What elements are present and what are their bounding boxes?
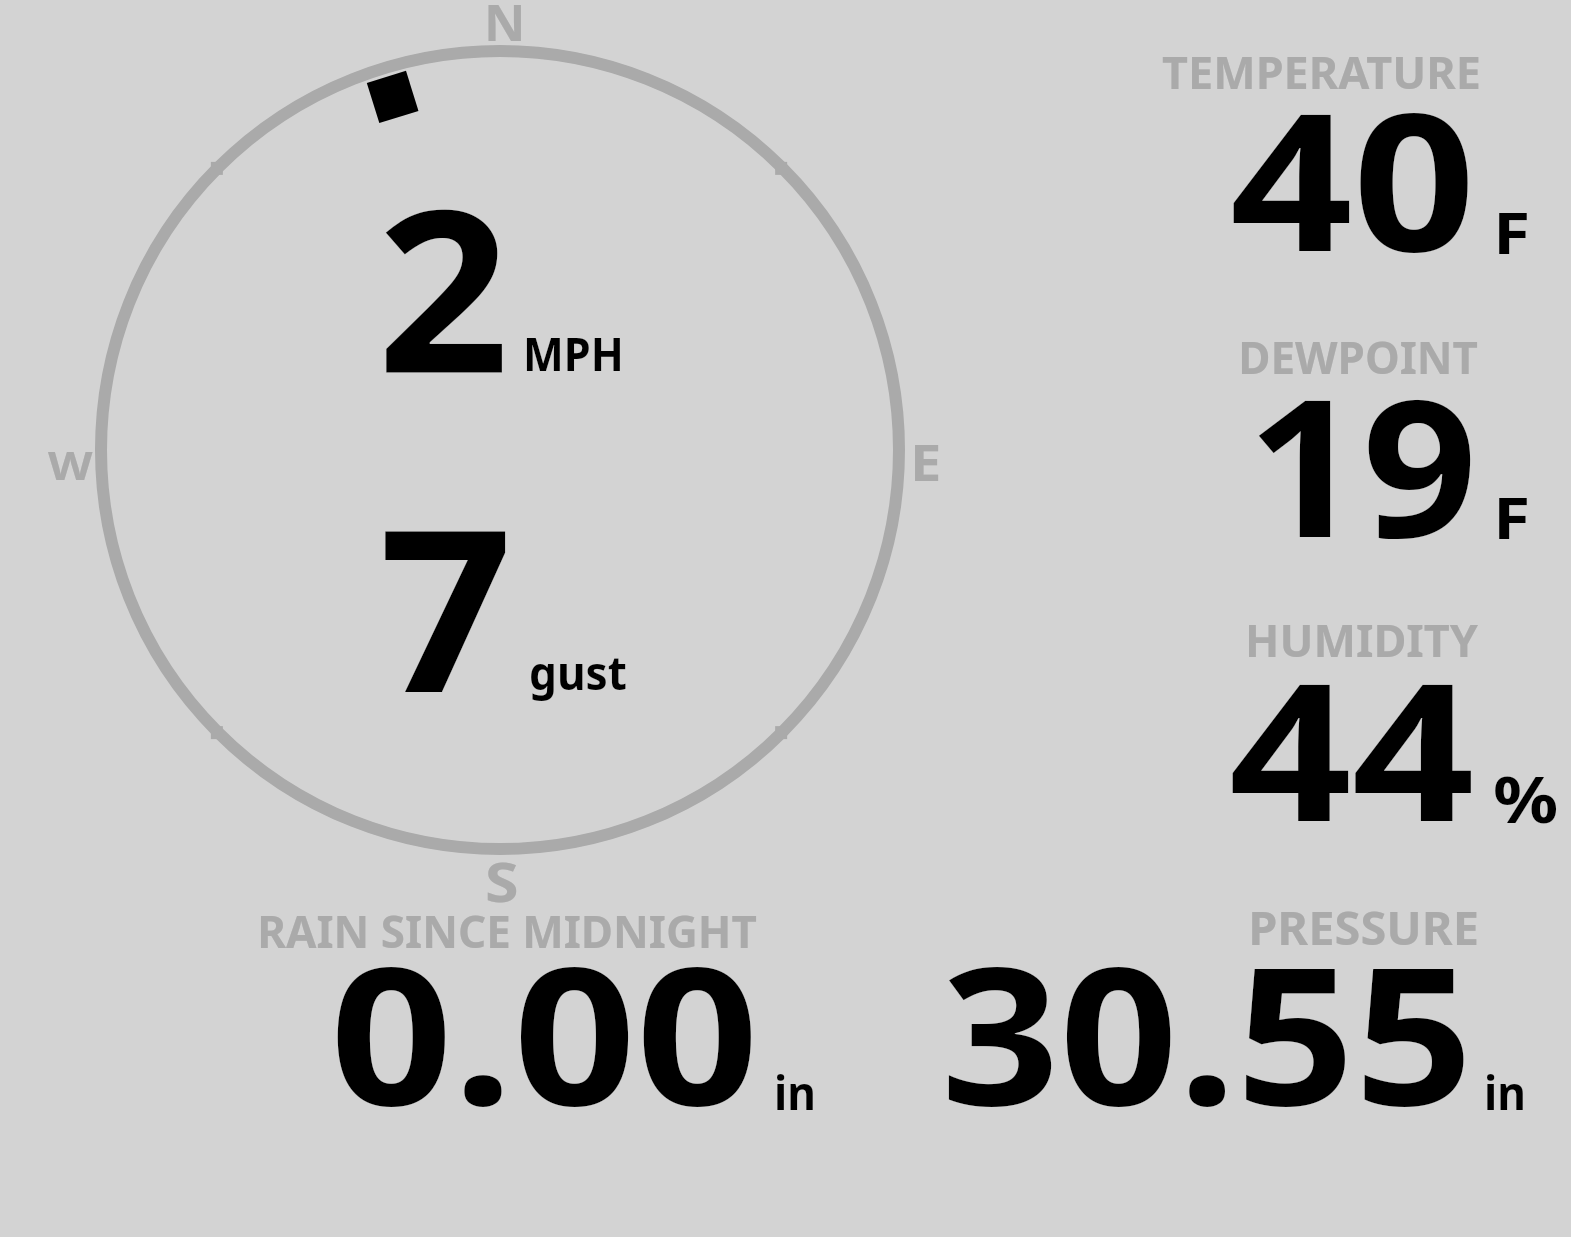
staticText: 0.00 [330, 902, 759, 1161]
staticText: in [1484, 1060, 1526, 1124]
staticText: RAIN SINCE MIDNIGHT [207, 901, 807, 963]
staticText: MPH [523, 322, 624, 385]
staticText: in [774, 1060, 816, 1124]
staticText: E [910, 426, 942, 495]
button[interactable]: Wind: 2 miles per hour, gusting 7, from … [88, 38, 912, 862]
staticText: S [485, 845, 519, 917]
staticText: N [484, 0, 526, 55]
staticText: W [48, 437, 93, 491]
button[interactable]: Rain since midnight 0.00 inches [200, 900, 830, 1120]
staticText: 44 [1229, 618, 1475, 877]
staticText: HUMIDITY [1000, 609, 1478, 672]
staticText: DEWPOINT [1000, 327, 1478, 389]
staticText: 40 [1230, 48, 1476, 307]
staticText: 2 [377, 131, 510, 437]
staticText: 30.55 [941, 902, 1474, 1161]
staticText: PRESSURE [1000, 895, 1479, 961]
staticText: 19 [1247, 334, 1478, 593]
button[interactable]: Humidity 44 percent [1000, 608, 1556, 833]
staticText: F [1493, 477, 1530, 556]
staticText: gust [529, 641, 628, 704]
button[interactable]: Temperature 40 degrees Fahrenheit [1000, 40, 1556, 265]
staticText: % [1493, 755, 1558, 842]
button[interactable]: Dewpoint 19 degrees Fahrenheit [1000, 325, 1556, 550]
staticText: TEMPERATURE [1003, 41, 1481, 104]
staticText: F [1493, 192, 1530, 271]
button[interactable]: Pressure 30.55 inches [900, 895, 1540, 1120]
staticText: 7 [379, 451, 513, 757]
